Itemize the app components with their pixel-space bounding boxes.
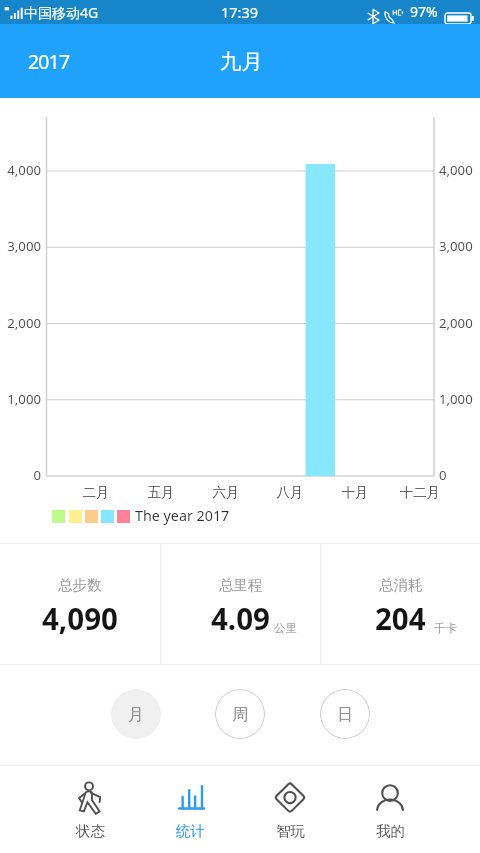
- staticText: 周: [232, 705, 248, 725]
- staticText: 八月: [260, 484, 320, 501]
- staticText: 4,090: [42, 598, 118, 638]
- staticText: 状态: [76, 822, 105, 840]
- button[interactable]: 状态: [40, 765, 140, 853]
- staticText: 2,000: [439, 314, 479, 332]
- staticText: 2,000: [0, 314, 41, 332]
- staticText: 17:39: [221, 2, 259, 22]
- staticText: 二月: [66, 484, 126, 501]
- button[interactable]: 我的: [340, 765, 440, 853]
- staticText: 智玩: [276, 822, 305, 840]
- staticText: 我的: [376, 822, 405, 840]
- staticText: 十二月: [390, 484, 450, 501]
- staticText: 3,000: [439, 237, 479, 255]
- button[interactable]: 总消耗: [321, 543, 480, 665]
- staticText: 日: [337, 705, 353, 725]
- staticText: 4,000: [0, 161, 41, 179]
- staticText: 公里: [274, 621, 297, 635]
- staticText: 中国移动4G: [24, 3, 99, 22]
- staticText: 月: [128, 705, 144, 725]
- staticText: 总消耗: [379, 576, 423, 594]
- staticText: 0: [439, 466, 479, 484]
- staticText: 4,000: [439, 161, 479, 179]
- staticText: 204: [375, 598, 426, 638]
- staticText: 十月: [325, 484, 385, 501]
- staticText: 3,000: [0, 237, 41, 255]
- staticText: 统计: [176, 822, 205, 840]
- staticText: 2017: [28, 48, 70, 75]
- staticText: 97%: [410, 2, 438, 21]
- staticText: 五月: [131, 484, 191, 501]
- staticText: 总步数: [58, 576, 102, 594]
- staticText: 4.09: [211, 598, 270, 638]
- button[interactable]: 2017: [10, 38, 88, 85]
- button[interactable]: 总里程: [161, 543, 320, 665]
- button[interactable]: 总步数: [0, 543, 160, 665]
- button[interactable]: 智玩: [240, 765, 340, 853]
- staticText: 六月: [196, 484, 256, 501]
- staticText: 1,000: [439, 390, 479, 408]
- staticText: 0: [0, 466, 41, 484]
- staticText: 1,000: [0, 390, 41, 408]
- button[interactable]: 日: [320, 689, 370, 739]
- button[interactable]: 九月: [202, 38, 281, 85]
- staticText: 九月: [220, 48, 263, 75]
- button[interactable]: 月: [111, 689, 161, 739]
- button[interactable]: 周: [215, 689, 265, 739]
- staticText: 总里程: [219, 576, 263, 594]
- button[interactable]: 统计: [140, 765, 240, 853]
- staticText: The year 2017: [135, 506, 230, 525]
- staticText: 千卡: [434, 621, 457, 635]
